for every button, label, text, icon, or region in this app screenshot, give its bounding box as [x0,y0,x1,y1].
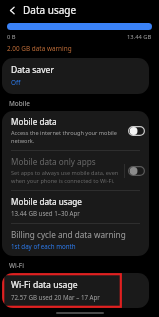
staticText: Data saver [11,64,54,76]
staticText: Off [11,78,21,87]
staticText: 2.00 GB data warning [7,44,72,53]
staticText: Mobile data [11,116,57,127]
staticText: 72.57 GB used 20 Mar – 17 Apr [11,293,100,301]
button[interactable]: Toggle false [128,166,145,176]
staticText: Wi-Fi data usage [11,279,78,291]
staticText: Billing cycle and data warning [11,229,126,240]
button[interactable]: Wi-Fi data usage [2,273,149,308]
button[interactable]: Data saver [2,58,149,94]
staticText: Data usage [23,3,77,17]
staticText: Mobile data only apps [11,156,96,167]
staticText: Mobile [9,99,30,108]
button[interactable]: Toggle true [128,126,145,136]
staticText: Mobile data usage [11,196,82,207]
staticText: Access the internet through your mobile … [11,129,121,145]
button[interactable]: Mobile data [2,111,149,150]
staticText: Set apps to always use mobile data, even… [11,169,121,185]
staticText: 13.44 GB [127,33,152,41]
staticText: 1st day of each month [11,242,76,250]
button[interactable]: Billing cycle and data warning [2,224,149,256]
button[interactable]: Mobile data usage [2,191,149,223]
button[interactable]: Back [4,2,20,18]
staticText: 0 B [7,33,16,41]
button[interactable]: Mobile data only apps [2,151,149,190]
staticText: 13.44 GB used 1–30 Apr [11,209,80,217]
staticText: Wi-Fi [9,261,24,270]
